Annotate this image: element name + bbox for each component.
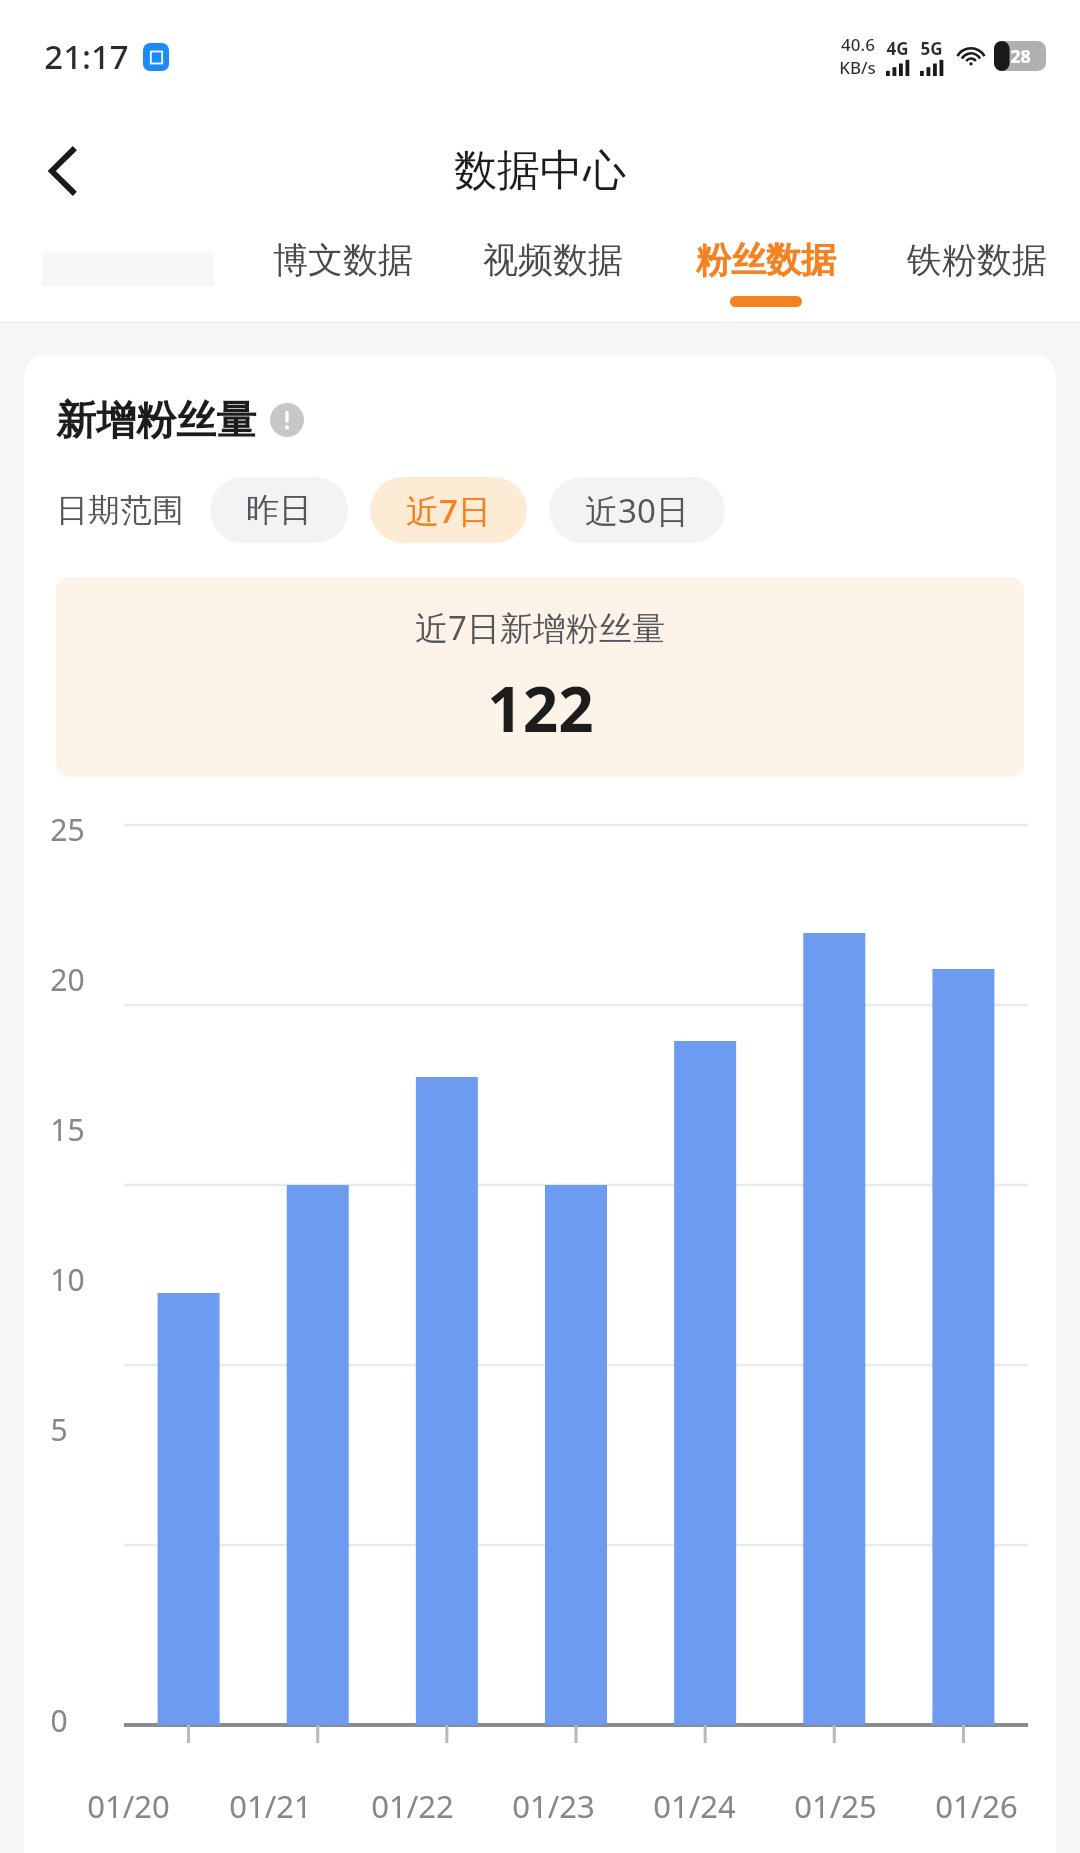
staticText: 近30日 — [585, 488, 689, 533]
staticText: 数据中心 — [454, 144, 626, 198]
staticText: 近7日 — [406, 488, 491, 533]
button[interactable]: 博文数据 — [238, 230, 448, 322]
other: Info — [270, 403, 304, 437]
button[interactable]: 新增粉丝量 — [56, 395, 304, 445]
staticText: 01/20 — [87, 1785, 170, 1827]
staticText: 10 — [50, 1259, 85, 1300]
staticText: 01/23 — [512, 1785, 595, 1827]
button[interactable]: Back — [20, 127, 108, 215]
staticText: 铁粉数据 — [907, 238, 1047, 282]
staticText: 40.6 — [841, 33, 875, 56]
staticText: 20 — [50, 959, 85, 1000]
staticText: 粉丝数据 — [696, 238, 836, 282]
staticText: 01/22 — [371, 1785, 454, 1827]
staticText: 25 — [50, 809, 85, 850]
staticText: 近7日新增粉丝量 — [415, 605, 665, 650]
button[interactable]: 昨日 — [210, 477, 348, 543]
staticText: 122 — [487, 666, 594, 750]
staticText: 视频数据 — [483, 238, 623, 282]
button[interactable] — [18, 230, 238, 322]
staticText: 新增粉丝量 — [56, 395, 256, 445]
staticText: 4G — [886, 37, 909, 60]
button[interactable]: 粉丝数据 — [658, 230, 873, 322]
staticText: 01/25 — [794, 1785, 877, 1827]
button[interactable]: 近30日 — [549, 477, 725, 543]
button[interactable]: 视频数据 — [448, 230, 658, 322]
staticText: 21:17 — [44, 34, 129, 79]
staticText: 01/21 — [229, 1785, 312, 1827]
staticText: 5G — [920, 37, 943, 60]
staticText: 5 — [50, 1409, 68, 1450]
staticText: 01/24 — [653, 1785, 736, 1827]
button[interactable]: 近7日 — [370, 477, 527, 543]
staticText: 0 — [50, 1700, 68, 1741]
staticText: KB/s — [839, 56, 876, 79]
staticText: 昨日 — [246, 489, 312, 531]
button[interactable]: 铁粉数据 — [873, 230, 1080, 322]
staticText: 01/26 — [935, 1785, 1018, 1827]
staticText: 28 — [1010, 44, 1031, 69]
staticText: 15 — [50, 1109, 85, 1150]
staticText: 日期范围 — [56, 490, 184, 530]
staticText: 博文数据 — [273, 238, 413, 282]
